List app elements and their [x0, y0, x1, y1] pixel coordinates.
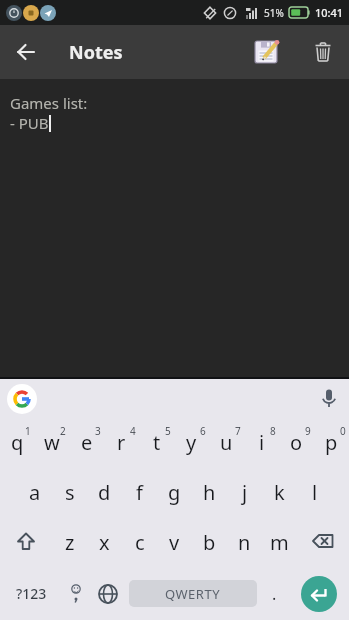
button[interactable] — [245, 25, 289, 79]
staticText: k — [274, 479, 285, 506]
staticText: a — [29, 479, 41, 506]
button[interactable]: . — [260, 567, 288, 620]
staticText: 1 — [25, 424, 31, 438]
staticText: 51% — [264, 6, 284, 20]
button[interactable]: h — [192, 467, 227, 517]
staticText: - PUB — [10, 113, 49, 133]
staticText: s — [65, 479, 75, 506]
button[interactable]: e — [69, 417, 104, 467]
button[interactable] — [297, 517, 349, 567]
button[interactable]: i — [244, 417, 279, 467]
staticText: n — [238, 529, 251, 556]
button[interactable] — [309, 381, 349, 417]
button[interactable]: f — [122, 467, 157, 517]
button[interactable]: Games list: — [0, 79, 349, 377]
staticText: l — [312, 479, 318, 506]
button[interactable]: k — [262, 467, 297, 517]
button[interactable]: QWERTY — [129, 567, 257, 620]
staticText: x — [99, 529, 110, 556]
button[interactable]: r — [104, 417, 139, 467]
staticText: r — [117, 429, 126, 456]
staticText: w — [44, 429, 60, 456]
button[interactable]: u — [209, 417, 244, 467]
staticText: h — [203, 479, 216, 506]
button[interactable]: c — [122, 517, 157, 567]
button[interactable] — [62, 567, 90, 620]
button[interactable]: v — [157, 517, 192, 567]
button[interactable]: d — [87, 467, 122, 517]
staticText: v — [169, 529, 180, 556]
staticText: d — [98, 479, 111, 506]
staticText: QWERTY — [165, 585, 221, 603]
staticText: 7 — [235, 424, 241, 438]
button[interactable]: l — [297, 467, 332, 517]
staticText: 0 — [340, 424, 346, 438]
staticText: j — [242, 479, 248, 506]
staticText: Games list: — [10, 93, 88, 113]
button[interactable]: z — [52, 517, 87, 567]
staticText: b — [203, 529, 216, 556]
button[interactable]: ?123 — [0, 567, 62, 620]
staticText: 5 — [165, 424, 171, 438]
button[interactable]: m — [262, 517, 297, 567]
staticText: 2 — [60, 424, 66, 438]
staticText: g — [168, 479, 181, 506]
staticText: ?123 — [16, 584, 47, 603]
staticText: m — [270, 529, 289, 556]
button[interactable]: g — [157, 467, 192, 517]
button[interactable]: q — [0, 417, 34, 467]
button[interactable]: o — [279, 417, 314, 467]
staticText: 6 — [200, 424, 206, 438]
button[interactable]: s — [52, 467, 87, 517]
button[interactable]: y — [174, 417, 209, 467]
button[interactable]: x — [87, 517, 122, 567]
button[interactable] — [7, 384, 37, 414]
staticText: q — [11, 429, 24, 456]
staticText: Notes — [69, 40, 123, 65]
staticText: 8 — [270, 424, 276, 438]
button[interactable]: w — [34, 417, 69, 467]
staticText: t — [153, 429, 161, 456]
staticText: 10:41 — [315, 5, 344, 20]
staticText: z — [65, 529, 75, 556]
button[interactable] — [0, 25, 52, 79]
staticText: e — [81, 429, 93, 456]
staticText: p — [325, 429, 338, 456]
button[interactable]: a — [17, 467, 52, 517]
staticText: 4 — [130, 424, 136, 438]
staticText: i — [259, 429, 265, 456]
button[interactable]: n — [227, 517, 262, 567]
staticText: . — [272, 583, 277, 605]
button[interactable]: t — [139, 417, 174, 467]
button[interactable] — [0, 517, 52, 567]
button[interactable]: j — [227, 467, 262, 517]
staticText: f — [136, 479, 143, 506]
button[interactable] — [303, 25, 343, 79]
staticText: y — [186, 429, 197, 456]
button[interactable] — [301, 576, 337, 612]
staticText: 9 — [305, 424, 311, 438]
staticText: o — [290, 429, 303, 456]
button[interactable]: b — [192, 517, 227, 567]
button[interactable] — [90, 567, 126, 620]
staticText: u — [220, 429, 233, 456]
staticText: c — [135, 529, 145, 556]
button[interactable]: p — [314, 417, 349, 467]
staticText: 3 — [95, 424, 101, 438]
